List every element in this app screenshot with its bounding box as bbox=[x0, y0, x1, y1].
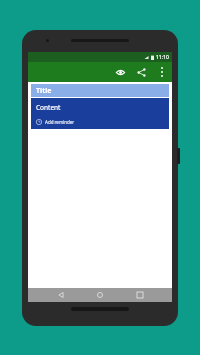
staticText: 11:10 bbox=[156, 54, 169, 61]
staticText: Title bbox=[36, 86, 52, 96]
button[interactable]: Add reminder bbox=[36, 119, 75, 125]
button[interactable]: More options bbox=[155, 65, 169, 79]
staticText: Add reminder bbox=[45, 119, 75, 125]
button[interactable]: Back bbox=[54, 288, 68, 302]
button[interactable]: Recent apps bbox=[133, 288, 147, 302]
button[interactable]: Title bbox=[31, 84, 169, 97]
staticText: Content bbox=[36, 103, 61, 112]
button[interactable]: Share bbox=[134, 65, 148, 79]
button[interactable]: Preview bbox=[113, 65, 127, 79]
button[interactable]: Home bbox=[93, 288, 107, 302]
button[interactable]: Content bbox=[31, 98, 169, 129]
